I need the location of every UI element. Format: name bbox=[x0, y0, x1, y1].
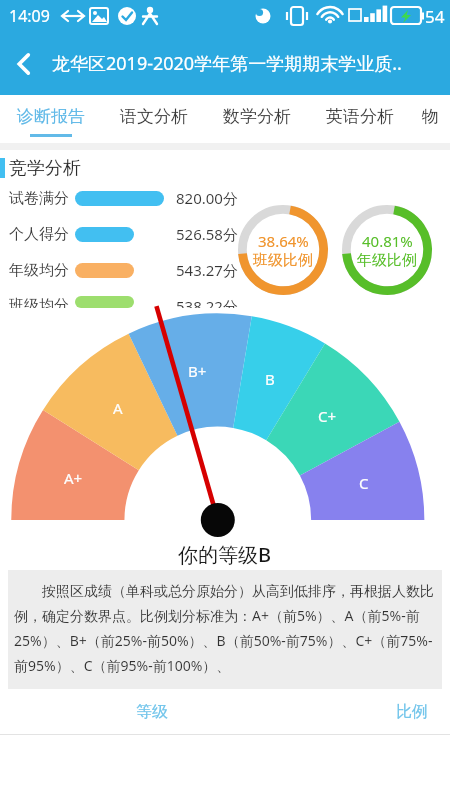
staticText: 526.58分 bbox=[176, 224, 238, 244]
staticText: 诊断报告 bbox=[17, 106, 85, 127]
staticText: 820.00分 bbox=[176, 188, 238, 208]
button[interactable]: 物 bbox=[411, 95, 450, 143]
staticText: 英语分析 bbox=[326, 106, 394, 127]
staticText: 你的等级B bbox=[178, 541, 272, 568]
staticText: 物 bbox=[422, 106, 439, 127]
staticText: 年级均分 bbox=[9, 261, 69, 280]
staticText: 个人得分 bbox=[9, 225, 69, 244]
staticText: 数学分析 bbox=[223, 106, 291, 127]
button[interactable]: 诊断报告 bbox=[0, 95, 102, 143]
staticText: 54 bbox=[425, 5, 445, 28]
staticText: A bbox=[113, 398, 123, 418]
staticText: 543.27分 bbox=[176, 260, 238, 280]
staticText: C+ bbox=[318, 406, 337, 426]
button[interactable]: 英语分析 bbox=[308, 95, 411, 143]
staticText: 40.81% bbox=[362, 231, 413, 251]
button[interactable]: 语文分析 bbox=[102, 95, 205, 143]
staticText: 龙华区2019-2020学年第一学期期末学业质.. bbox=[52, 51, 402, 76]
button[interactable]: 数学分析 bbox=[205, 95, 308, 143]
staticText: 等级 bbox=[136, 702, 168, 722]
staticText: 语文分析 bbox=[120, 106, 188, 127]
staticText: 竞学分析 bbox=[9, 157, 81, 180]
staticText: 14:09 bbox=[9, 5, 50, 27]
button[interactable]: Back bbox=[0, 40, 48, 88]
staticText: B+ bbox=[188, 361, 207, 381]
staticText: B bbox=[265, 369, 275, 389]
staticText: A+ bbox=[64, 468, 83, 488]
staticText: 38.64% bbox=[258, 231, 309, 251]
staticText: 年级比例 bbox=[357, 251, 417, 270]
staticText: 班级比例 bbox=[253, 251, 313, 270]
staticText: 班级均分 bbox=[9, 296, 69, 308]
staticText: 比例 bbox=[396, 702, 428, 722]
staticText: 538.22分 bbox=[176, 296, 238, 308]
staticText: 按照区成绩（单科或总分原始分）从高到低排序，再根据人数比例，确定分数界点。比例划… bbox=[14, 581, 436, 675]
staticText: 试卷满分 bbox=[9, 189, 69, 208]
button[interactable]: 等级 bbox=[136, 702, 168, 722]
button[interactable]: 比例 bbox=[396, 702, 428, 722]
staticText: C bbox=[359, 473, 369, 493]
